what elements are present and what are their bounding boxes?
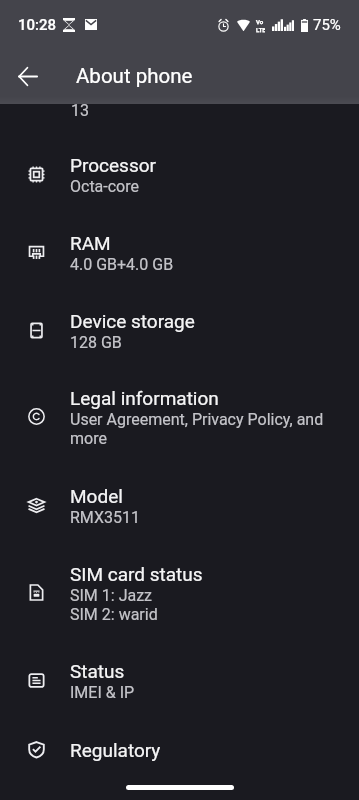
staticText: SIM card status [70,563,203,586]
staticText: 4.0 GB+4.0 GB [70,255,174,274]
staticText: IMEI & IP [70,683,135,702]
staticText: 128 GB [70,333,122,352]
button[interactable]: Regulatory [0,722,359,800]
staticText: 13 [71,101,89,120]
staticText: Model [70,485,123,508]
staticText: 10:28 [18,16,57,34]
staticText: User Agreement, Privacy Policy, and more [70,410,344,448]
button[interactable]: Legal information [0,370,359,468]
staticText: 75% [313,16,341,34]
staticText: RAM [70,232,111,255]
button[interactable]: SIM card status [0,546,359,643]
staticText: About phone [76,64,193,88]
staticText: Status [70,660,125,683]
button[interactable]: Device storage [0,293,359,370]
staticText: LTE [256,26,265,33]
staticText: Octa-core [70,177,139,196]
staticText: Processor [70,154,156,177]
staticText: RMX3511 [70,508,140,527]
button[interactable]: Back [4,52,52,100]
staticText: Regulatory [70,739,161,762]
staticText: Legal information [70,387,219,410]
staticText: Vo [256,18,264,25]
button[interactable]: RAM [0,215,359,293]
button[interactable]: Model [0,468,359,546]
staticText: SIM 1: Jazz SIM 2: warid [70,586,158,624]
staticText: Device storage [70,310,195,333]
button[interactable]: Status [0,643,359,722]
button[interactable]: Processor [0,137,359,215]
